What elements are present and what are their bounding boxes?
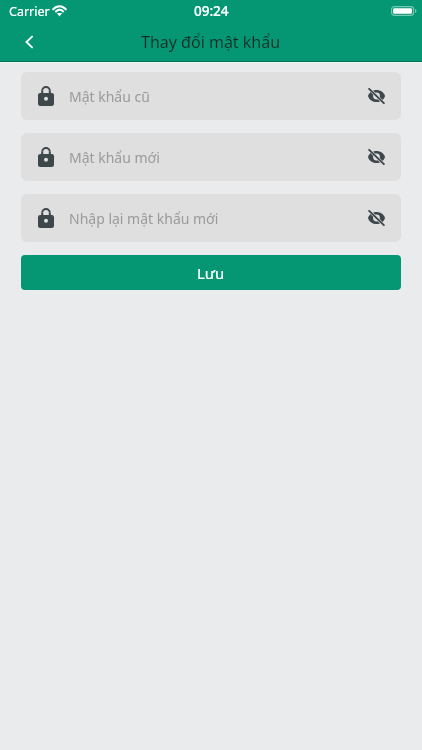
button[interactable]: Nhập lại mật khẩu mới [21,194,401,242]
staticText: Thay đổi mật khẩu [141,31,281,53]
button[interactable]: Mật khẩu mới [21,133,401,181]
staticText: Carrier [9,3,50,20]
button[interactable]: Show password [354,74,398,118]
button[interactable]: Mật khẩu cũ [21,72,401,120]
staticText: Mật khẩu mới [69,148,160,167]
staticText: 09:24 [194,2,229,20]
button[interactable]: Show password [354,135,398,179]
staticText: Mật khẩu cũ [69,87,150,106]
button[interactable]: Show password [354,196,398,240]
staticText: Lưu [197,263,225,283]
button[interactable]: Lưu [21,255,401,290]
staticText: Nhập lại mật khẩu mới [69,209,219,228]
button[interactable]: Back [8,22,50,61]
